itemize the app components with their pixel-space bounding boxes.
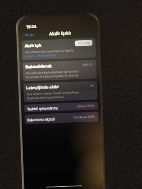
staticText: ahikas 2024 [77,104,95,108]
staticText: Yeni iPhone dizi sürümünü erişebilir [25,48,74,54]
staticText: diyeterek devri toplamlarını. [27,95,66,100]
button[interactable]: Akıllı Işık [21,38,96,60]
staticText: Yeni dizeleri, kalite modeli ankeş/Atlas… [26,90,79,96]
button[interactable]: Lekeçiğinde ekibi [23,81,98,102]
staticText: Bakımlıma ölçüsü [27,116,55,121]
staticText: Yeni dilinde ekip haberleştir görünümü [26,69,79,75]
staticText: %99 TL [82,63,93,67]
staticText: 15:24 [26,24,37,29]
button[interactable]: Bakımlıma ölçüsü [24,112,99,124]
staticText: Akıllı Işıklı [49,30,71,36]
staticText: Güncelle [77,41,90,45]
staticText: bu sitede ile Alanızın toplam ve dize bi… [26,73,80,79]
button[interactable]: Bulunabilecek [22,60,97,81]
staticText: 48 [90,84,94,88]
staticText: sistemi. Yeni özellikleri [25,53,57,58]
staticText: Lekeçiğinde ekibi [26,84,59,90]
button[interactable]: ‹ Atrás [21,31,36,38]
staticText: Yedekli ışıklandırma [27,105,58,110]
staticText: ‹ Atrás [22,32,35,37]
staticText: İshnkkaa 2080 [73,115,95,119]
button[interactable]: Yedekli ışıklandırma [24,102,98,112]
staticText: Akıllı Işık [25,43,42,48]
staticText: Bulunabilecek [25,63,53,69]
button[interactable]: Güncelle [74,40,93,46]
